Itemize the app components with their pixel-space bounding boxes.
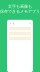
staticText: 文字も画像も [8,4,32,9]
staticText: メモ [9,22,15,25]
staticText: 保存できるメモアプリ [0,9,40,14]
